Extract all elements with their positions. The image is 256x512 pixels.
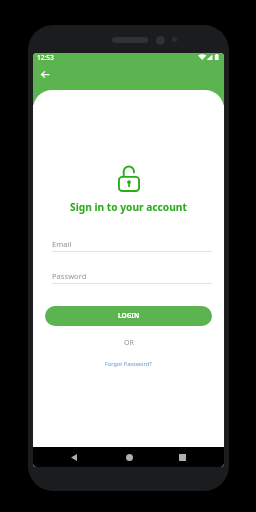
staticText: Sign in to your account (70, 200, 187, 214)
button[interactable]: Recents (172, 447, 192, 467)
button[interactable]: LOGIN (45, 306, 212, 326)
button[interactable]: Back (64, 447, 84, 467)
button[interactable]: Email (52, 238, 212, 252)
button[interactable]: Home (119, 447, 139, 467)
button[interactable]: Password (52, 270, 212, 284)
button[interactable]: Forgot Password? (105, 360, 152, 368)
staticText: Email (52, 239, 72, 249)
staticText: Password (52, 271, 87, 281)
staticText: OR (124, 338, 134, 348)
staticText: 12:53 (37, 53, 54, 62)
button[interactable]: Back (35, 65, 54, 84)
staticText: LOGIN (118, 311, 140, 320)
staticText: Forgot Password? (105, 360, 152, 368)
